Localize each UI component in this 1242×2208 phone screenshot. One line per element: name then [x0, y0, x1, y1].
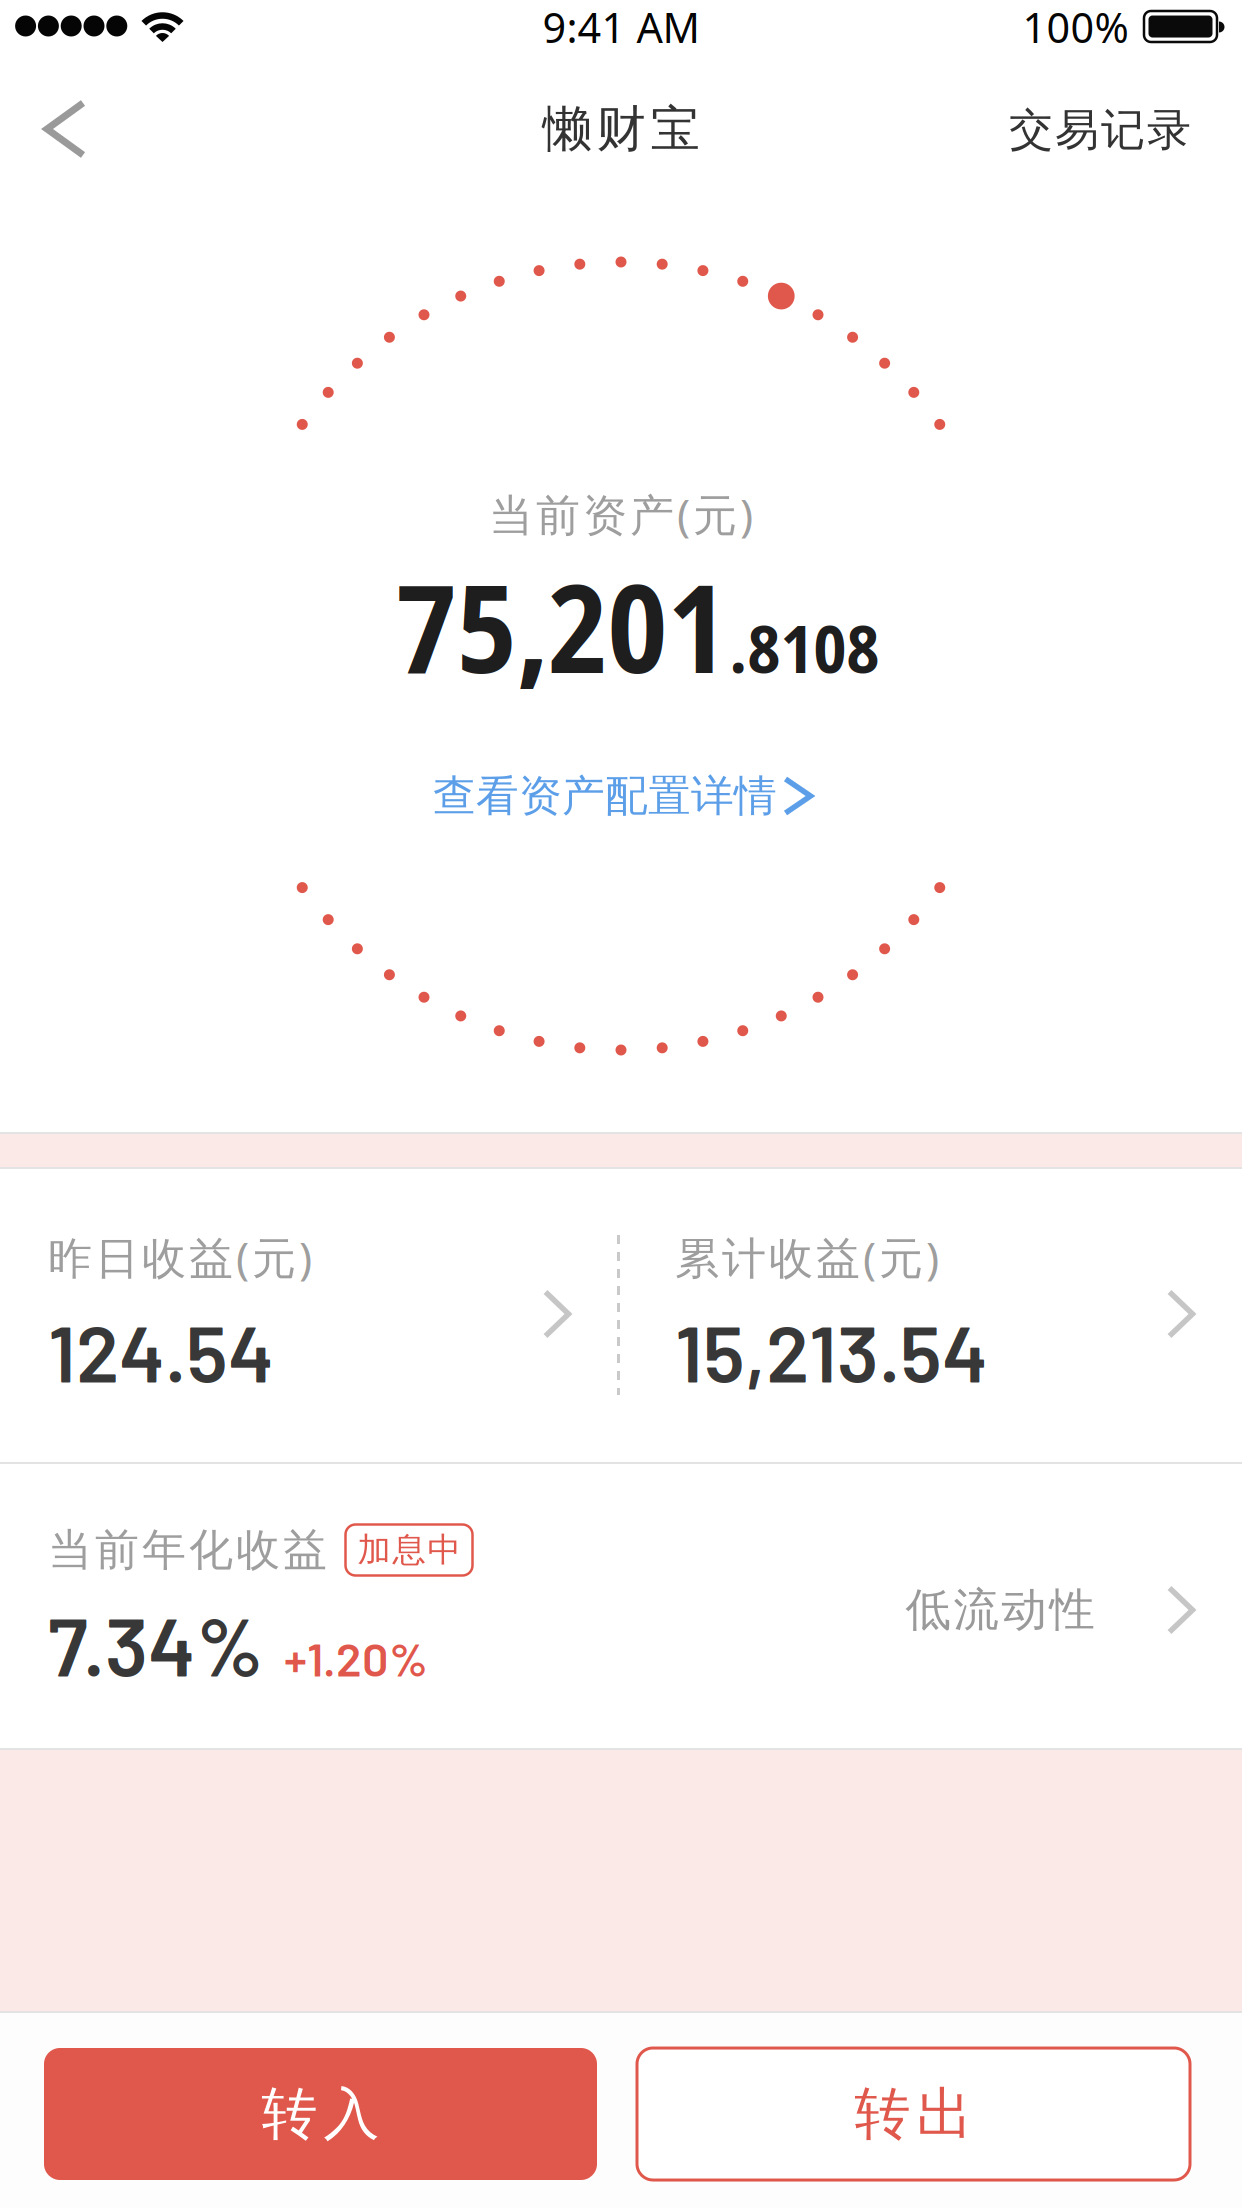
staticText: 转入 — [261, 2080, 379, 2148]
staticText: 累计收益(元) — [675, 1228, 939, 1286]
button[interactable]: 交易记录 — [989, 83, 1211, 177]
staticText: 15,213.54 — [675, 1304, 988, 1398]
staticText: 124.54 — [48, 1304, 274, 1398]
staticText: 懒财宝 — [542, 99, 699, 159]
staticText: 交易记录 — [1009, 103, 1191, 157]
button[interactable]: Back — [10, 74, 120, 184]
staticText: +1.20% — [284, 1630, 428, 1686]
button[interactable]: 昨日收益(元) — [0, 1169, 621, 1462]
staticText: 查看资产配置详情 — [433, 770, 777, 822]
staticText: 100% — [1022, 0, 1128, 54]
staticText: 低流动性 — [905, 1582, 1094, 1638]
staticText: 当前年化收益 — [48, 1523, 327, 1577]
staticText: 加息中 — [357, 1529, 460, 1570]
staticText: .8108 — [729, 602, 879, 693]
staticText: 转出 — [854, 2080, 972, 2148]
button[interactable]: 查看资产配置详情 — [423, 760, 819, 832]
staticText: 昨日收益(元) — [48, 1228, 312, 1286]
staticText: 75,201 — [396, 543, 727, 709]
button[interactable]: 累计收益(元) — [621, 1169, 1242, 1462]
button[interactable]: 转出 — [637, 2048, 1190, 2180]
staticText: 9:41 AM — [542, 0, 699, 54]
staticText: 7.34% — [48, 1595, 264, 1693]
button[interactable]: 转入 — [44, 2048, 597, 2180]
button[interactable]: 当前年化收益 — [0, 1464, 1242, 1748]
staticText: 当前资产(元) — [489, 485, 753, 543]
